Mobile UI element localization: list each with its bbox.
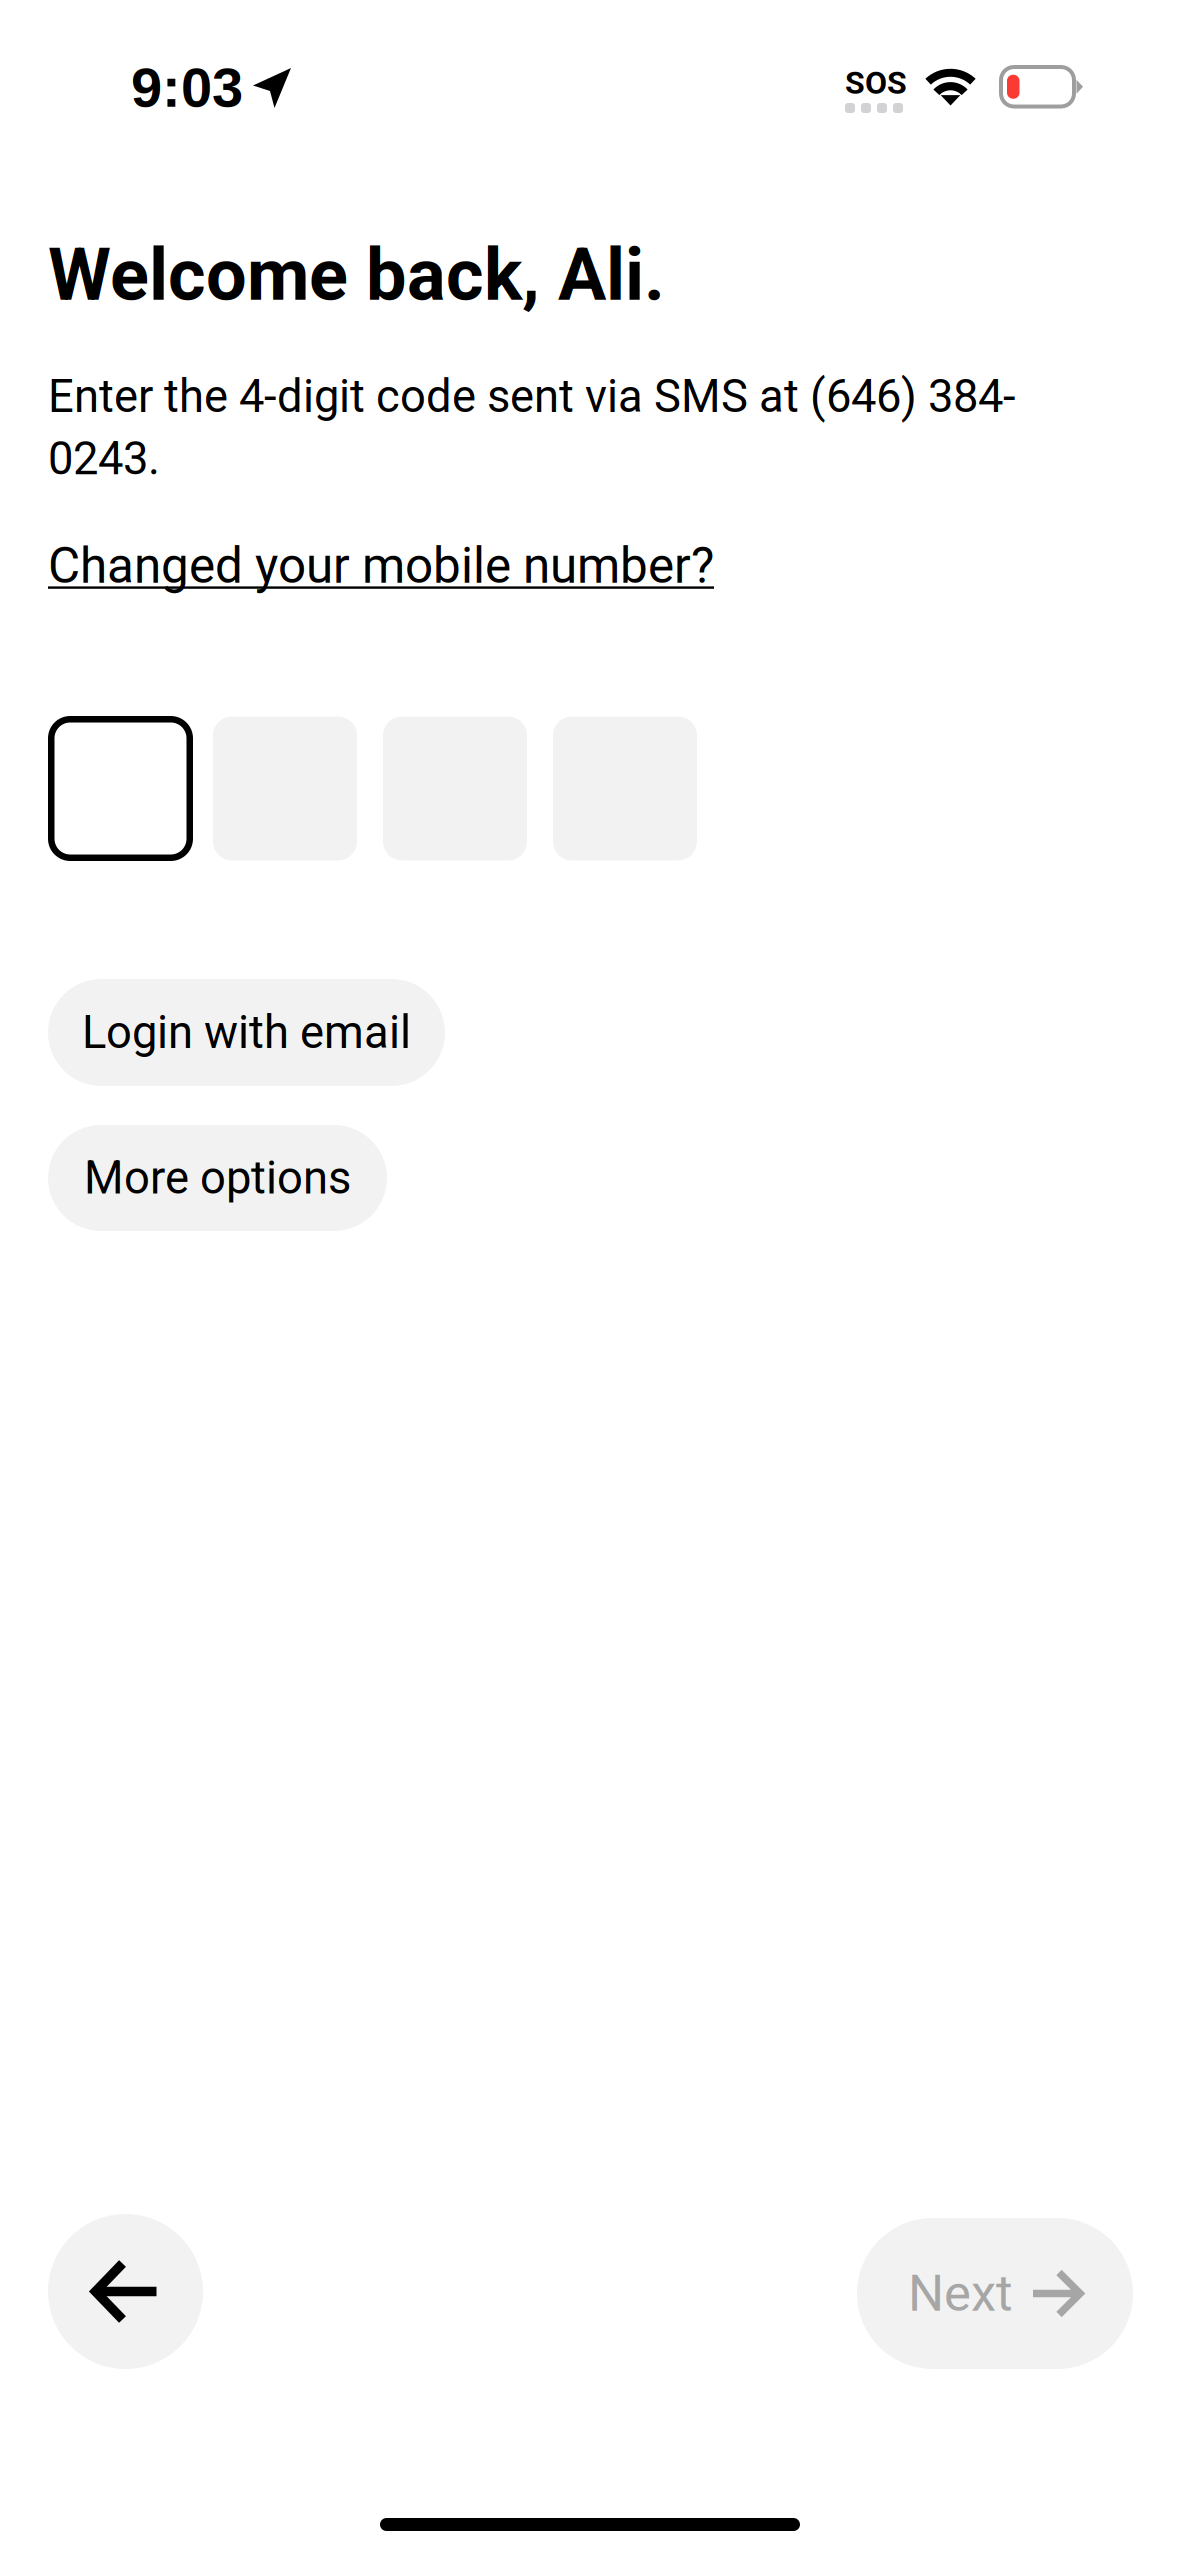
staticText: Welcome back, Ali. — [48, 233, 665, 317]
button[interactable]: Next — [857, 2218, 1133, 2369]
staticText: Login with email — [82, 1006, 411, 1059]
button[interactable]: Back — [48, 2214, 203, 2369]
button[interactable]: More options — [48, 1125, 387, 1231]
staticText: 9:03 — [131, 56, 243, 119]
staticText: More options — [84, 1151, 351, 1204]
staticText: Changed your mobile number? — [48, 537, 714, 595]
staticText: 0243. — [48, 432, 160, 485]
button[interactable]: Login with email — [48, 979, 445, 1086]
staticText: SOS — [845, 64, 907, 101]
button[interactable]: Changed your mobile number? — [48, 537, 714, 595]
staticText: Next — [908, 2264, 1013, 2323]
staticText: Enter the 4-digit code sent via SMS at (… — [48, 370, 1016, 423]
